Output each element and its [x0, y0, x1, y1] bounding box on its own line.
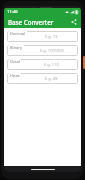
button[interactable]: E.g. 48: [7, 73, 78, 84]
button[interactable]: E.g. 110: [7, 59, 78, 70]
staticText: E.g. 72: [45, 34, 58, 39]
staticText: Hexa: [10, 73, 20, 78]
button[interactable]: E.g. 1001000: [7, 45, 78, 56]
staticText: E.g. 110: [44, 62, 59, 67]
staticText: E.g. 48: [45, 76, 58, 81]
staticText: Decimal: [10, 31, 26, 36]
staticText: Base Converter: [8, 18, 54, 26]
button[interactable]: Share: [69, 17, 79, 27]
staticText: Octal: [10, 59, 20, 64]
staticText: E.g. 1001000: [40, 48, 64, 53]
button[interactable]: E.g. 72: [7, 31, 78, 42]
staticText: 11:46: [7, 9, 18, 15]
staticText: Binary: [10, 45, 23, 50]
